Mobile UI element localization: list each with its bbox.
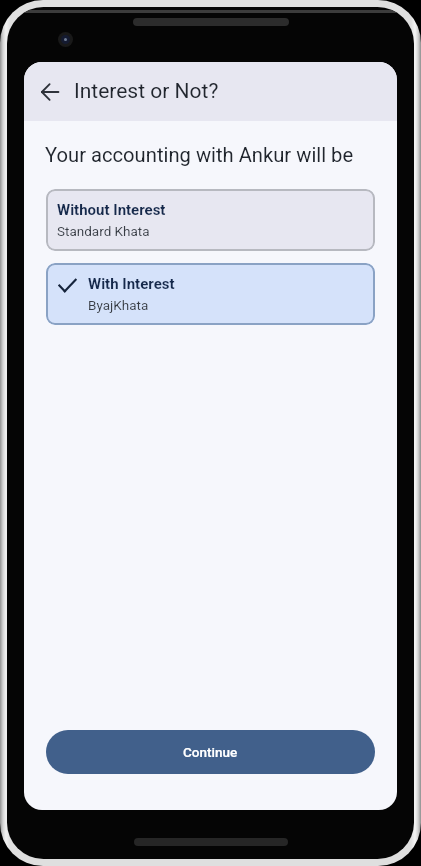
staticText: Your accounting with Ankur will be <box>45 143 354 167</box>
staticText: Continue <box>183 744 238 760</box>
button[interactable]: With Interest <box>46 263 375 325</box>
button[interactable]: Continue <box>46 730 375 774</box>
staticText: Without Interest <box>57 201 166 219</box>
button[interactable]: Without Interest <box>46 189 375 251</box>
staticText: Interest or Not? <box>74 79 219 104</box>
staticText: With Interest <box>88 275 175 293</box>
staticText: Standard Khata <box>57 223 150 239</box>
staticText: ByajKhata <box>88 297 149 313</box>
button[interactable]: Back <box>33 75 67 109</box>
